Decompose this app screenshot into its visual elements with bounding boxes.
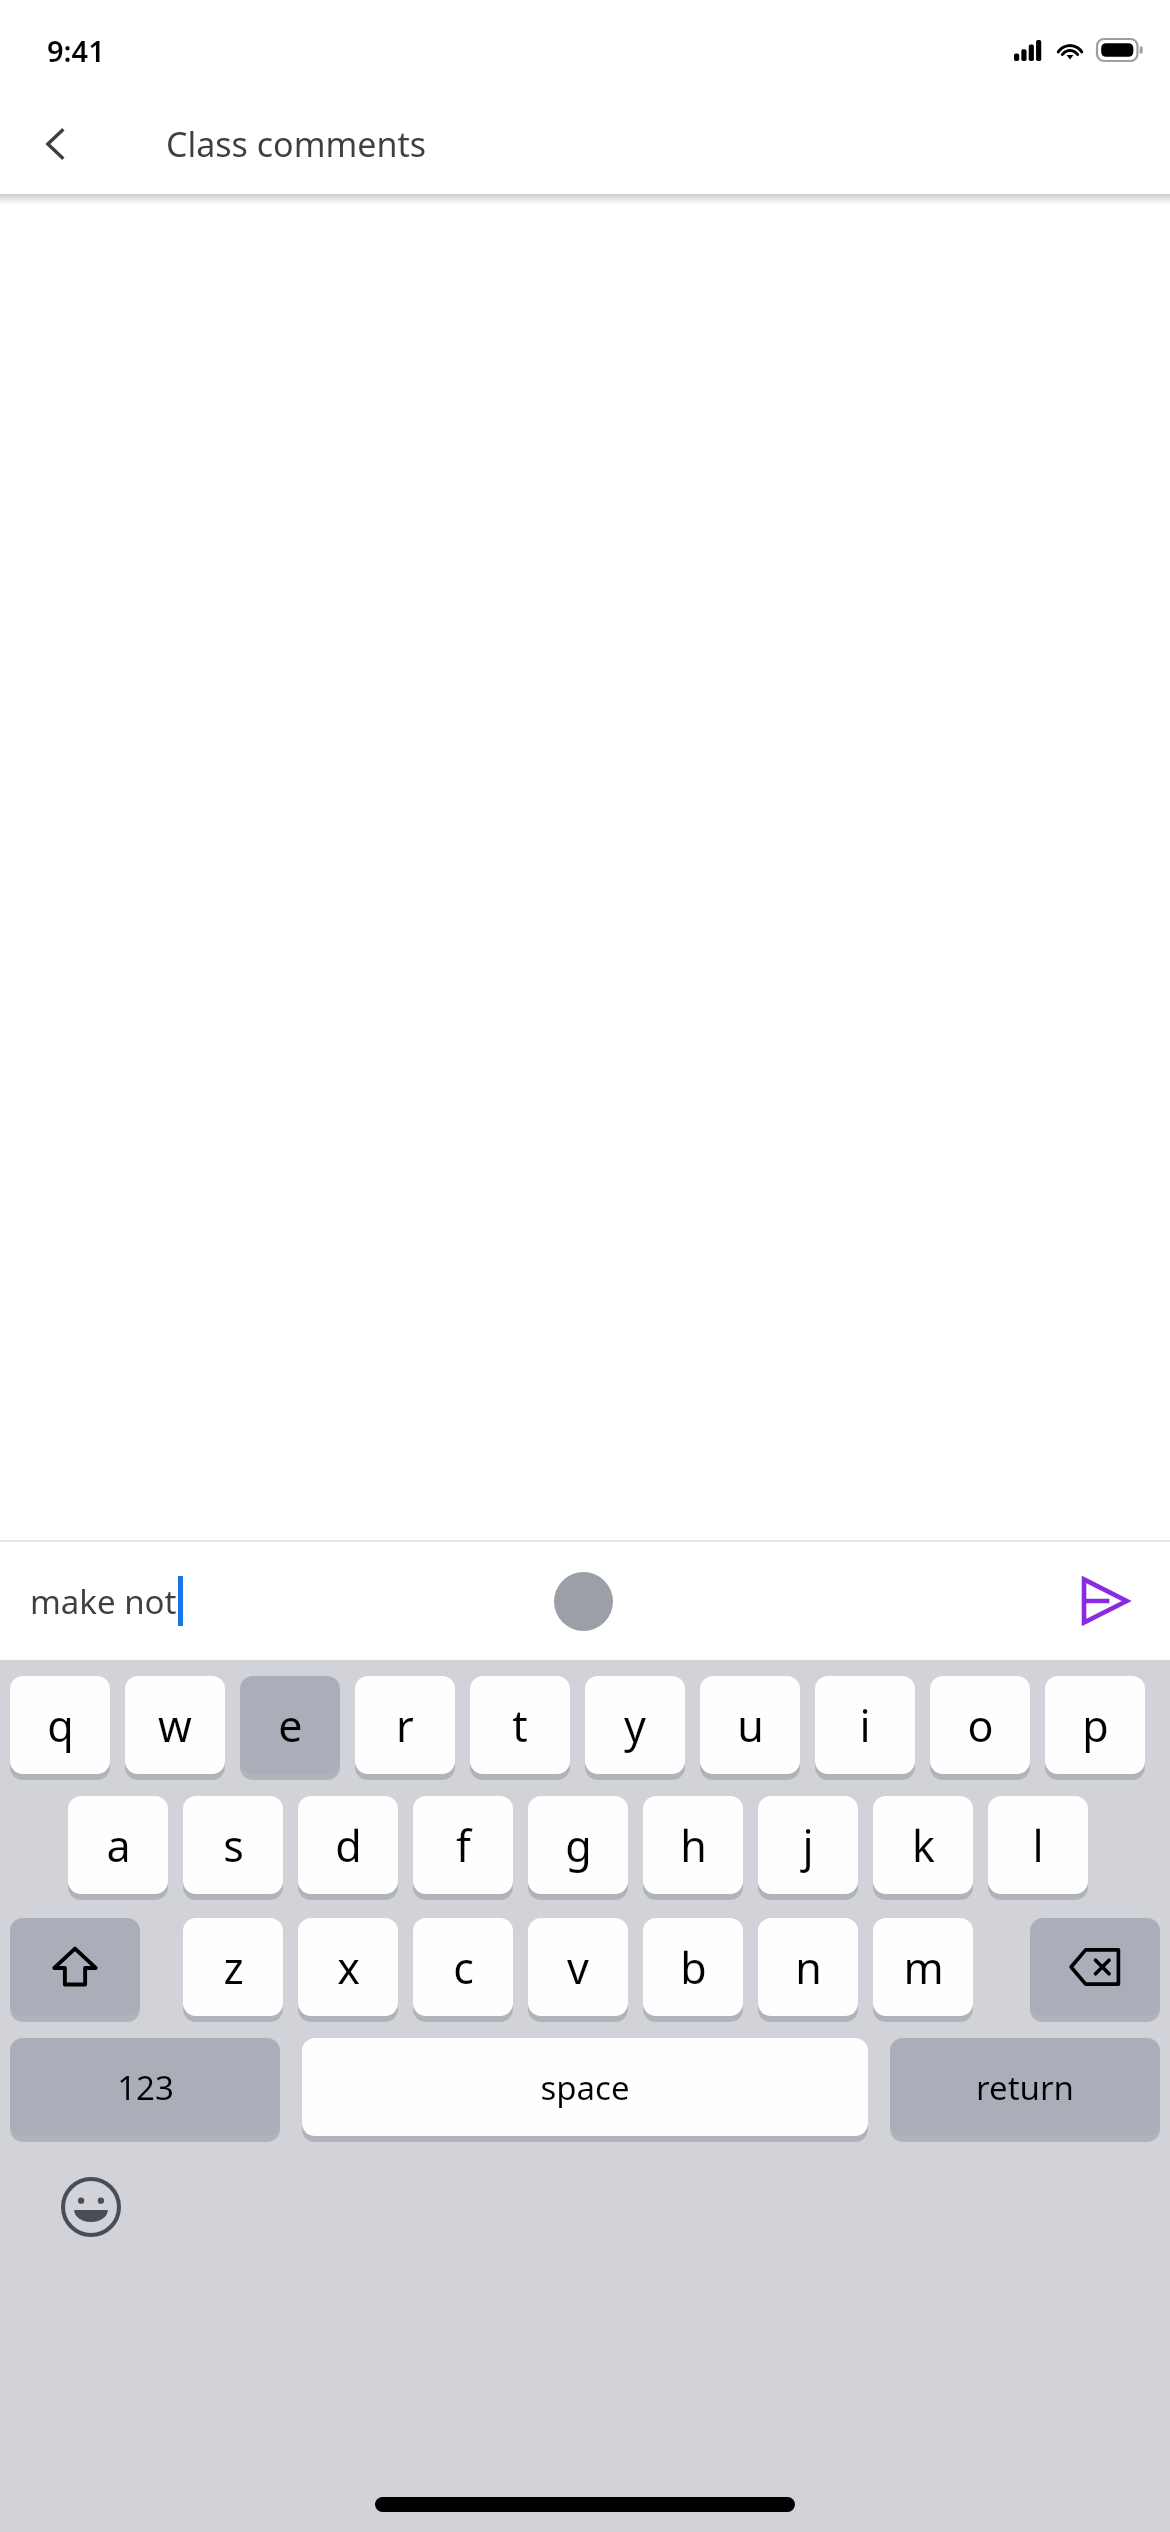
button[interactable]: i <box>815 1676 915 1774</box>
staticText: i <box>859 1696 871 1755</box>
button[interactable]: k <box>873 1796 973 1894</box>
button[interactable]: Shift <box>10 1918 140 2016</box>
button[interactable]: t <box>470 1676 570 1774</box>
staticText: l <box>1032 1816 1044 1875</box>
staticText: h <box>680 1816 707 1875</box>
button[interactable]: f <box>413 1796 513 1894</box>
staticText: c <box>453 1938 474 1997</box>
button[interactable]: j <box>758 1796 858 1894</box>
button[interactable]: Backspace <box>1030 1918 1160 2016</box>
button[interactable]: w <box>125 1676 225 1774</box>
staticText: p <box>1082 1696 1109 1755</box>
button[interactable]: n <box>758 1918 858 2016</box>
staticText: s <box>223 1816 244 1875</box>
staticText: v <box>567 1938 589 1997</box>
staticText: t <box>512 1696 528 1755</box>
button[interactable]: p <box>1045 1676 1145 1774</box>
staticText: m <box>903 1938 944 1997</box>
button[interactable]: Emoji <box>52 2168 130 2246</box>
staticText: g <box>565 1816 592 1875</box>
button[interactable]: r <box>355 1676 455 1774</box>
button[interactable]: h <box>643 1796 743 1894</box>
staticText: r <box>396 1696 414 1755</box>
staticText: j <box>802 1816 814 1875</box>
staticText: q <box>47 1696 74 1755</box>
staticText: o <box>967 1696 994 1755</box>
button[interactable]: Send <box>1062 1559 1146 1643</box>
button[interactable]: a <box>68 1796 168 1894</box>
staticText: 123 <box>117 2065 174 2110</box>
button[interactable]: o <box>930 1676 1030 1774</box>
button[interactable]: q <box>10 1676 110 1774</box>
staticText: z <box>223 1938 244 1997</box>
staticText: u <box>737 1696 764 1755</box>
button[interactable]: g <box>528 1796 628 1894</box>
button[interactable]: b <box>643 1918 743 2016</box>
staticText: x <box>337 1938 360 1997</box>
staticText: k <box>912 1816 935 1875</box>
button[interactable]: u <box>700 1676 800 1774</box>
button[interactable]: space <box>302 2038 868 2136</box>
staticText: f <box>456 1816 471 1875</box>
staticText: y <box>624 1696 646 1755</box>
button[interactable]: v <box>528 1918 628 2016</box>
staticText: 9:41 <box>47 31 105 70</box>
button[interactable]: d <box>298 1796 398 1894</box>
staticText: n <box>795 1938 822 1997</box>
button[interactable]: Profile <box>554 1572 613 1631</box>
button[interactable]: c <box>413 1918 513 2016</box>
button[interactable]: z <box>183 1918 283 2016</box>
button[interactable]: s <box>183 1796 283 1894</box>
staticText: w <box>158 1696 192 1755</box>
button[interactable]: e <box>240 1676 340 1774</box>
staticText: a <box>106 1816 131 1875</box>
button[interactable]: 123 <box>10 2038 280 2136</box>
staticText: make not <box>30 1579 177 1624</box>
button[interactable]: l <box>988 1796 1088 1894</box>
staticText: space <box>540 2065 630 2110</box>
button[interactable]: Back <box>24 112 88 176</box>
staticText: return <box>976 2065 1074 2110</box>
button[interactable]: return <box>890 2038 1160 2136</box>
button[interactable]: x <box>298 1918 398 2016</box>
staticText: e <box>278 1696 303 1755</box>
staticText: b <box>680 1938 707 1997</box>
staticText: Class comments <box>166 121 426 167</box>
button[interactable]: m <box>873 1918 973 2016</box>
staticText: d <box>335 1816 362 1875</box>
button[interactable]: y <box>585 1676 685 1774</box>
